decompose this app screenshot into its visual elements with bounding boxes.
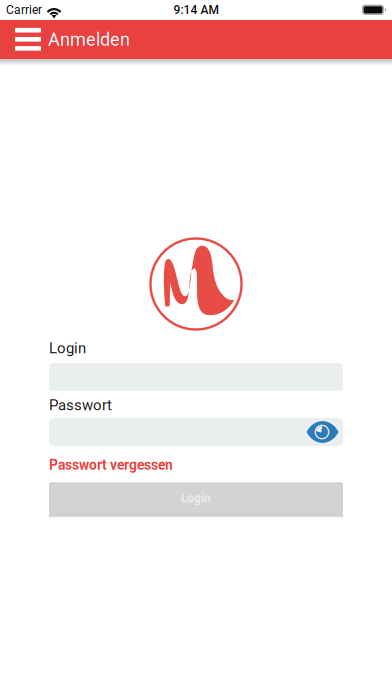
button[interactable]: Passwort vergessen [49, 457, 173, 473]
staticText: Passwort [49, 396, 112, 414]
staticText: Login [49, 339, 86, 357]
button[interactable]: Menu [0, 21, 48, 58]
staticText: 9:14 AM [173, 3, 218, 17]
staticText: Anmelden [48, 29, 130, 50]
staticText: Carrier [6, 3, 42, 17]
button[interactable]: Show password [306, 421, 343, 443]
button[interactable]: Login [49, 482, 343, 518]
staticText: Login [181, 491, 211, 505]
staticText: Passwort vergessen [49, 457, 173, 473]
